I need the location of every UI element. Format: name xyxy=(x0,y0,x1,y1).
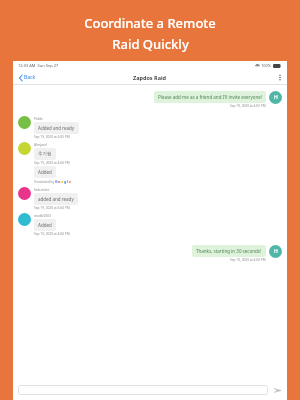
staticText: 100% xyxy=(261,63,272,68)
staticText: 12:03 AM Sun Sep 27 xyxy=(18,63,59,68)
staticText: o xyxy=(58,179,61,184)
staticText: Ahnjard xyxy=(34,142,47,147)
button[interactable]: modk3003 xyxy=(13,211,287,237)
staticText: Coordinate a Remote xyxy=(84,14,216,32)
staticText: H xyxy=(274,94,278,101)
staticText: o xyxy=(61,179,64,184)
button[interactable]: Ahnjard xyxy=(13,140,287,166)
staticText: Please add me as a friend and I'll invit… xyxy=(158,94,262,100)
staticText: Thanks, starting in 30 seconds! xyxy=(196,248,262,254)
staticText: Zapdos Raid xyxy=(133,74,167,81)
staticText: G xyxy=(55,179,58,184)
staticText: Sakurster xyxy=(34,187,50,192)
staticText: Sep 19, 2020 at 4:03 PM xyxy=(34,135,70,139)
staticText: Pidds xyxy=(34,116,43,121)
staticText: e xyxy=(69,179,72,184)
button[interactable]: Sakurster xyxy=(13,185,287,211)
staticText: Sep 19, 2020 at 4:04 PM xyxy=(34,161,70,165)
staticText: Raid Quickly xyxy=(112,35,189,53)
button[interactable]: Added xyxy=(34,166,56,178)
staticText: added and ready xyxy=(38,196,74,202)
staticText: Added and ready xyxy=(38,125,75,131)
button[interactable]: Send xyxy=(272,385,282,395)
staticText: Translated by xyxy=(34,180,55,184)
staticText: Back xyxy=(24,74,36,81)
staticText: l xyxy=(67,179,69,184)
staticText: Added xyxy=(38,222,52,228)
staticText: 추가됨 xyxy=(38,151,52,157)
staticText: Sep 19, 2020 at 4:04 PM xyxy=(34,232,70,236)
button[interactable]: Pidds xyxy=(13,114,287,140)
button[interactable]: More options xyxy=(276,73,284,81)
button[interactable]: Message input xyxy=(18,385,268,395)
button[interactable]: Back xyxy=(17,72,38,83)
staticText: Sep 19, 2020 at 4:03 PM xyxy=(230,104,266,108)
button[interactable]: Thanks, starting in 30 seconds! xyxy=(13,243,287,264)
staticText: modk3003 xyxy=(34,213,51,218)
staticText: Sep 19, 2020 at 4:04 PM xyxy=(230,258,266,262)
staticText: g xyxy=(64,179,67,184)
staticText: H xyxy=(274,248,278,255)
staticText: Added xyxy=(38,169,52,175)
button[interactable]: Please add me as a friend and I'll invit… xyxy=(13,89,287,110)
staticText: Sep 19, 2020 at 4:04 PM xyxy=(34,206,70,210)
